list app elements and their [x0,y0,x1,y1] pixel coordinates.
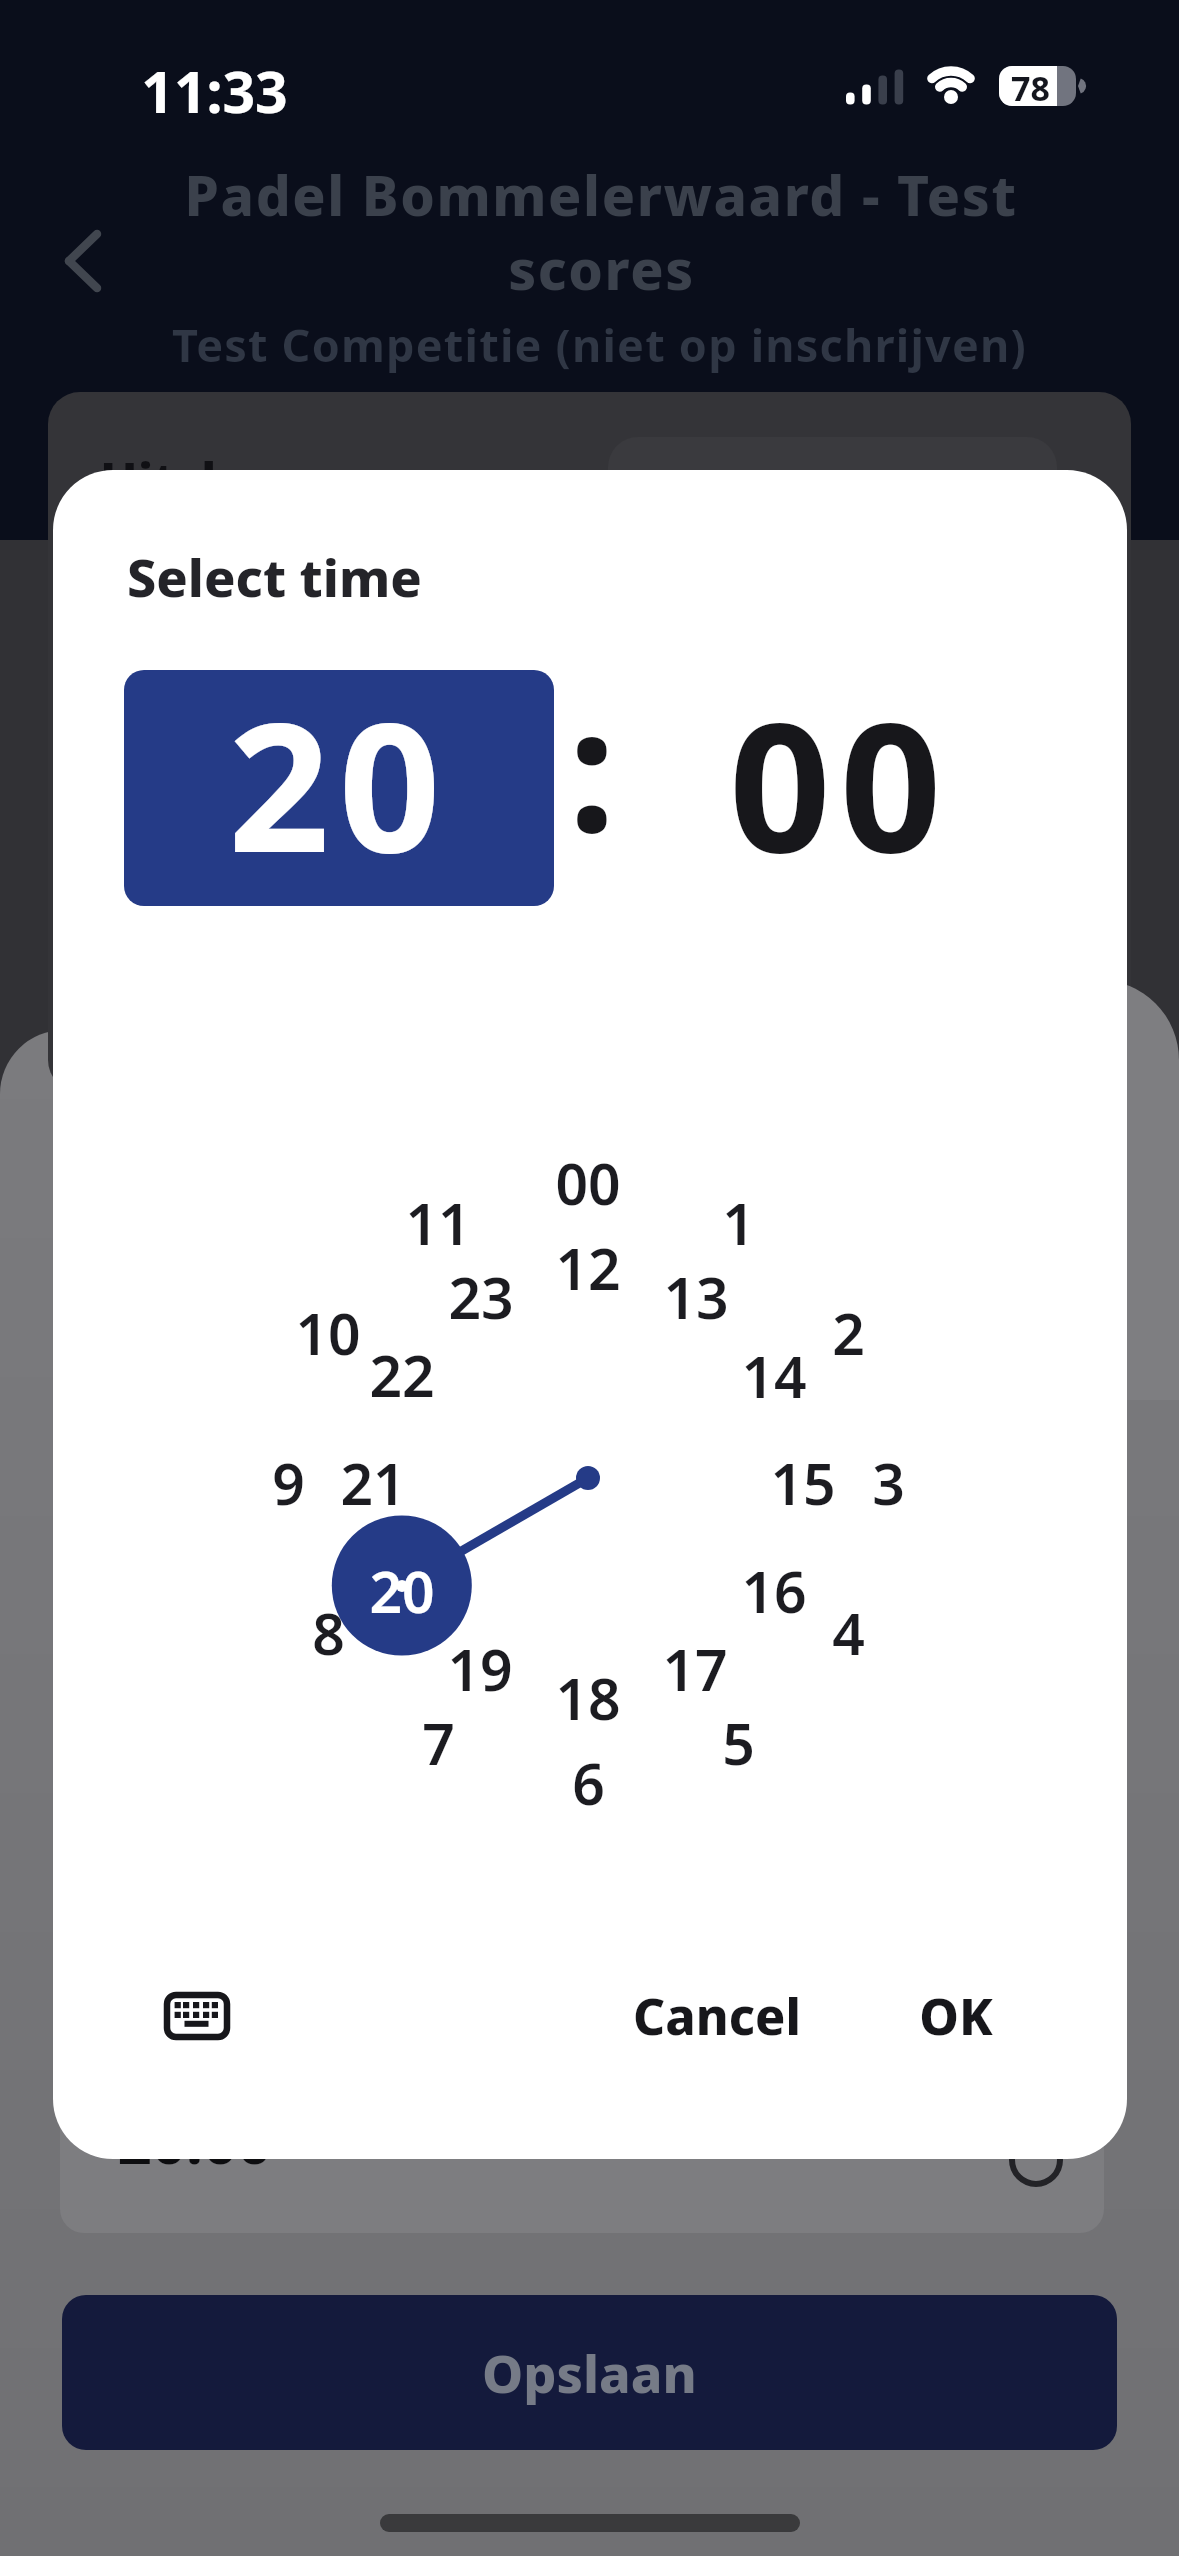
staticText: OK [919,1982,993,2050]
button[interactable]: 3 [833,1444,943,1506]
staticText: 9 [272,1444,305,1506]
button[interactable]: 8 [273,1594,383,1656]
staticText: 18 [555,1659,621,1721]
button[interactable]: 16 [719,1552,829,1614]
staticText: Opslaan [482,2337,697,2408]
staticText: : [568,650,616,870]
staticText: 17 [662,1630,728,1692]
staticText: Padel Bommelerwaard - Test [184,157,1018,232]
button[interactable]: OK [891,1976,1021,2056]
button[interactable]: 17 [640,1630,750,1692]
staticText: 5 [722,1704,755,1766]
button[interactable]: 14 [719,1337,829,1399]
button[interactable]: 10 [273,1294,383,1356]
button[interactable]: 11 [383,1184,493,1246]
button[interactable]: 00 [626,670,1054,905]
button[interactable]: 20 [124,670,554,906]
staticText: 20:00 [117,2100,272,2180]
staticText: 2 [832,1294,865,1356]
button[interactable] [164,1992,230,2040]
staticText: Uitslag [100,446,279,514]
staticText: Test Competitie (niet op inschrijven) [172,314,1027,375]
staticText: 14 [741,1337,807,1399]
staticText: 6 [572,1744,605,1806]
button[interactable]: 22 [347,1336,457,1398]
button[interactable]: 4 [793,1594,903,1656]
button[interactable]: 9 [233,1444,343,1506]
button[interactable]: Opslaan [62,2295,1117,2450]
button[interactable]: 00 [533,1144,643,1206]
button[interactable]: 5 [683,1704,793,1766]
staticText: 78 [1011,65,1050,109]
staticText: scores [508,231,695,306]
staticText: 8 [312,1594,345,1656]
button[interactable]: Cancel [607,1976,827,2056]
staticText: 4 [832,1594,865,1656]
staticText: 20 [228,670,450,898]
staticText: 7 [422,1704,455,1766]
staticText: 12 [555,1229,621,1291]
button[interactable]: 18 [533,1659,643,1721]
button[interactable]: 12 [533,1229,643,1291]
staticText: 00 [555,1144,621,1206]
staticText: 19 [447,1630,513,1692]
button[interactable]: 2 [793,1294,903,1356]
staticText: 22 [369,1336,435,1398]
button[interactable]: 6 [533,1744,643,1806]
staticText: 20 [369,1552,435,1614]
button[interactable]: 19 [425,1630,535,1692]
staticText: 00 [729,670,951,897]
button[interactable]: 15 [748,1444,858,1506]
staticText: 13 [663,1258,729,1320]
staticText: Cancel [633,1982,801,2050]
staticText: 11 [405,1184,471,1246]
staticText: 11:33 [141,52,288,122]
staticText: 3 [872,1444,905,1506]
button[interactable]: 1 [683,1184,793,1246]
staticText: Select time [127,541,422,612]
button[interactable]: 7 [383,1704,493,1766]
staticText: 1 [722,1184,755,1246]
staticText: 10 [295,1294,361,1356]
staticText: 15 [770,1444,836,1506]
button[interactable]: 23 [426,1258,536,1320]
staticText: 23 [448,1258,514,1320]
staticText: 21 [340,1444,406,1506]
staticText: 16 [741,1552,807,1614]
button[interactable]: 13 [641,1258,751,1320]
button[interactable]: 21 [318,1444,428,1506]
button[interactable]: 20 [347,1552,457,1614]
